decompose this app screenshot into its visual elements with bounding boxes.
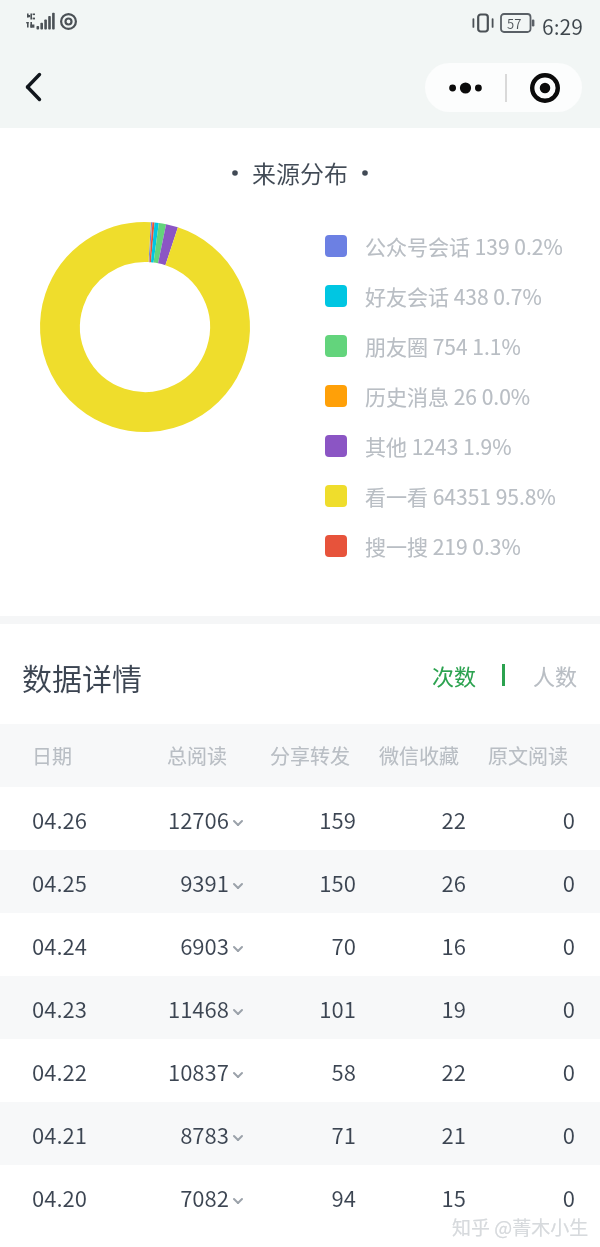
button[interactable]: 04.22 bbox=[0, 1039, 600, 1102]
staticText: 0 bbox=[455, 929, 575, 961]
staticText: 0 bbox=[455, 803, 575, 835]
button[interactable]: 朋友圈 754 1.1% bbox=[325, 321, 521, 371]
staticText: 15 bbox=[346, 1181, 466, 1213]
staticText: 58 bbox=[236, 1055, 356, 1087]
staticText: 6903 bbox=[79, 929, 229, 961]
button[interactable]: 历史消息 26 0.0% bbox=[325, 371, 531, 421]
button[interactable]: 看一看 64351 95.8% bbox=[325, 471, 556, 521]
staticText: 来源分布 bbox=[252, 155, 348, 190]
staticText: 0 bbox=[455, 992, 575, 1024]
staticText: 26 bbox=[346, 866, 466, 898]
staticText: 11468 bbox=[79, 992, 229, 1024]
staticText: 70 bbox=[236, 929, 356, 961]
staticText: 04.22 bbox=[32, 1055, 87, 1087]
staticText: 04.25 bbox=[32, 866, 87, 898]
button[interactable]: 次数 bbox=[429, 653, 480, 697]
staticText: 朋友圈 754 1.1% bbox=[365, 331, 521, 361]
staticText: 04.21 bbox=[32, 1118, 87, 1150]
staticText: 日期 bbox=[32, 741, 72, 770]
staticText: 12706 bbox=[79, 803, 229, 835]
button[interactable]: 04.24 bbox=[0, 913, 600, 976]
staticText: 公众号会话 139 0.2% bbox=[365, 231, 563, 261]
staticText: 150 bbox=[236, 866, 356, 898]
staticText: 微信收藏 bbox=[319, 741, 459, 770]
staticText: 19 bbox=[346, 992, 466, 1024]
button[interactable]: 04.26 bbox=[0, 787, 600, 850]
staticText: 159 bbox=[236, 803, 356, 835]
staticText: 原文阅读 bbox=[428, 741, 568, 770]
staticText: 21 bbox=[346, 1118, 466, 1150]
staticText: 好友会话 438 0.7% bbox=[365, 281, 542, 311]
staticText: 6:29 bbox=[542, 11, 583, 41]
staticText: 04.23 bbox=[32, 992, 87, 1024]
staticText: 10837 bbox=[79, 1055, 229, 1087]
staticText: 历史消息 26 0.0% bbox=[365, 381, 531, 411]
button[interactable]: 人数 bbox=[530, 653, 581, 697]
button[interactable]: 搜一搜 219 0.3% bbox=[325, 521, 521, 571]
staticText: 94 bbox=[236, 1181, 356, 1213]
staticText: 0 bbox=[455, 1118, 575, 1150]
staticText: 知乎 @菁木小生 bbox=[452, 1213, 589, 1241]
button[interactable]: Back bbox=[11, 65, 55, 109]
staticText: 9391 bbox=[79, 866, 229, 898]
button[interactable]: 其他 1243 1.9% bbox=[325, 421, 512, 471]
staticText: 其他 1243 1.9% bbox=[365, 431, 512, 461]
staticText: 101 bbox=[236, 992, 356, 1024]
staticText: 数据详情 bbox=[22, 655, 142, 698]
staticText: 8783 bbox=[79, 1118, 229, 1150]
staticText: 22 bbox=[346, 803, 466, 835]
staticText: 0 bbox=[455, 1055, 575, 1087]
staticText: 分享转发 bbox=[210, 741, 350, 770]
staticText: 0 bbox=[455, 866, 575, 898]
staticText: 57 bbox=[507, 14, 522, 32]
staticText: 04.20 bbox=[32, 1181, 87, 1213]
staticText: 次数 bbox=[432, 659, 477, 691]
staticText: 04.26 bbox=[32, 803, 87, 835]
staticText: 16 bbox=[346, 929, 466, 961]
staticText: 看一看 64351 95.8% bbox=[365, 481, 556, 511]
staticText: 71 bbox=[236, 1118, 356, 1150]
staticText: 7082 bbox=[79, 1181, 229, 1213]
button[interactable]: 公众号会话 139 0.2% bbox=[325, 221, 563, 271]
button[interactable]: More options bbox=[425, 63, 582, 112]
staticText: 0 bbox=[455, 1181, 575, 1213]
staticText: 总阅读 bbox=[87, 741, 227, 770]
staticText: 搜一搜 219 0.3% bbox=[365, 531, 521, 561]
staticText: 04.24 bbox=[32, 929, 87, 961]
button[interactable]: 好友会话 438 0.7% bbox=[325, 271, 542, 321]
button[interactable]: 04.25 bbox=[0, 850, 600, 913]
button[interactable]: 04.20 bbox=[0, 1165, 600, 1228]
button[interactable]: 04.23 bbox=[0, 976, 600, 1039]
button[interactable]: 04.21 bbox=[0, 1102, 600, 1165]
staticText: 人数 bbox=[533, 659, 578, 691]
staticText: 22 bbox=[346, 1055, 466, 1087]
